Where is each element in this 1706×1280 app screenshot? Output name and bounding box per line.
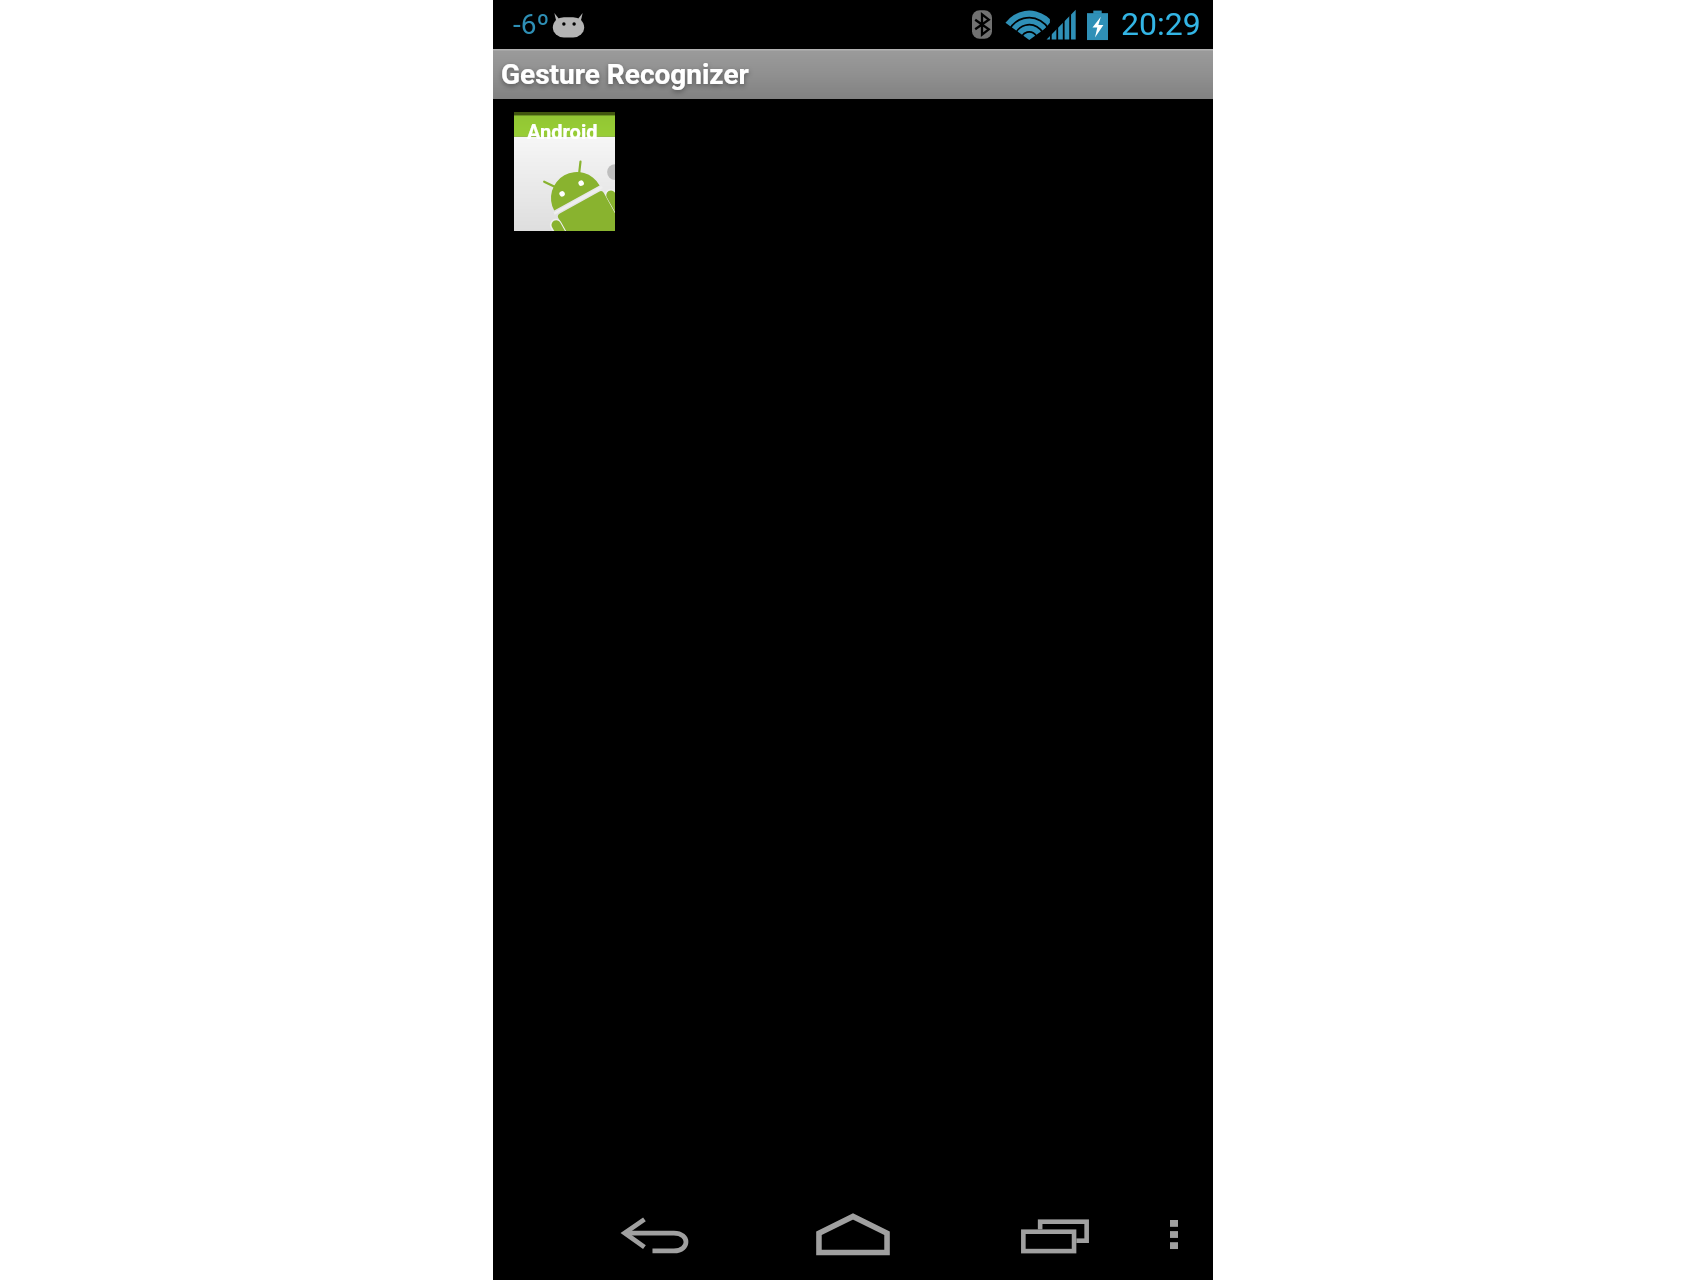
button[interactable]: Recent apps [999,1188,1111,1280]
button[interactable]: More options [1134,1188,1214,1280]
button[interactable]: Android [514,112,615,231]
staticText: -6º [513,8,550,41]
staticText: Android [527,120,598,143]
staticText: Gesture Recognizer [501,58,749,91]
staticText: 20:29 [1121,5,1201,43]
button[interactable]: Gesture Recognizer [493,49,1213,99]
button[interactable]: Back [600,1188,712,1280]
button[interactable]: Home [797,1188,909,1280]
